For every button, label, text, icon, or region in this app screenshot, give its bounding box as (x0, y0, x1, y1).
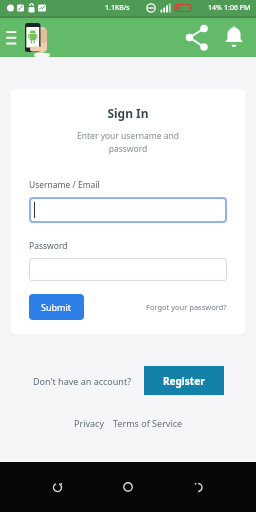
button[interactable]: Privacy (74, 417, 105, 429)
button[interactable] (183, 24, 209, 50)
staticText: Sign In (29, 105, 227, 121)
button[interactable]: Submit (29, 294, 84, 320)
button[interactable] (2, 27, 22, 47)
staticText: 1:06 PM (224, 3, 251, 13)
button[interactable] (93, 462, 163, 512)
button[interactable] (29, 197, 227, 223)
button[interactable]: Register (144, 366, 224, 395)
staticText: 1.1KB/s (105, 3, 130, 13)
button[interactable] (24, 20, 50, 57)
staticText: Enter your username and password (29, 130, 227, 155)
staticText: Password (29, 240, 68, 252)
staticText: Don't have an account? (33, 375, 132, 387)
button[interactable] (23, 462, 93, 512)
staticText: Submit (41, 301, 72, 313)
button[interactable] (29, 258, 227, 281)
button[interactable]: Terms of Service (113, 417, 183, 429)
button[interactable]: Forgot your password? (146, 302, 227, 312)
staticText: Register (163, 374, 205, 388)
staticText: Username / Email (29, 179, 100, 191)
button[interactable] (163, 462, 233, 512)
button[interactable] (222, 25, 246, 49)
staticText: 14% (208, 3, 224, 13)
